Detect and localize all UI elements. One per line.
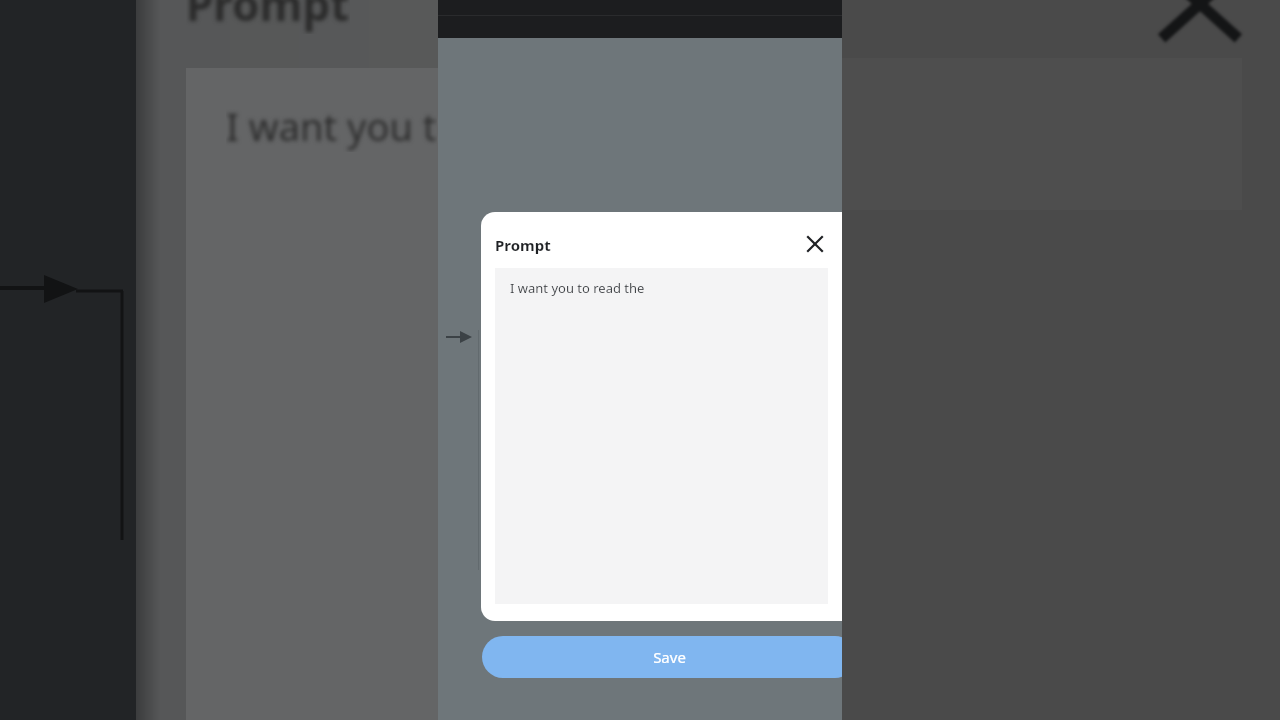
staticText: Prompt <box>186 0 350 34</box>
staticText: I want you t <box>226 100 437 152</box>
staticText: Prompt <box>495 235 551 255</box>
button[interactable]: Save <box>482 636 842 678</box>
button[interactable]: Close <box>801 230 829 258</box>
staticText: I want you to read the <box>510 279 645 297</box>
staticText: Save <box>653 647 686 667</box>
button[interactable]: I want you to read the <box>495 268 828 604</box>
